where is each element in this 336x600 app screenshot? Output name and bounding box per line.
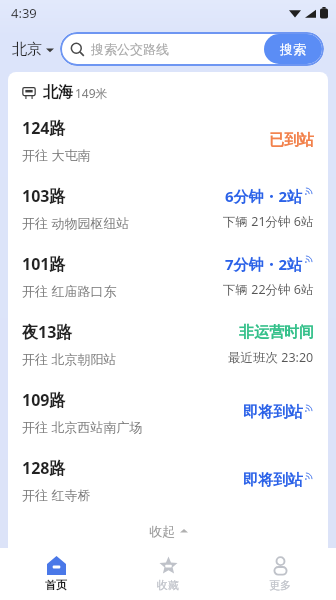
staticText: 搜索 [280,41,306,57]
staticText: 收藏 [157,578,179,592]
button[interactable]: 搜索 [264,34,322,64]
staticText: 即将到站 [243,403,303,422]
staticText: 128路 [22,457,66,479]
staticText: 开往 大屯南 [22,146,91,164]
staticText: 更多 [269,578,291,592]
staticText: 124路 [22,117,66,139]
button[interactable]: 夜13路 [8,310,328,378]
staticText: 下辆 22分钟 6站 [223,281,314,298]
staticText: 开往 北京西站南广场 [22,418,143,436]
button[interactable]: 109路 [8,378,328,446]
staticText: 最近班次 23:20 [228,349,314,366]
staticText: 101路 [22,253,66,275]
button[interactable]: 收起 [8,514,328,548]
staticText: 开往 红寺桥 [22,486,91,504]
staticText: 非运营时间 [239,323,314,342]
staticText: 北京 [12,40,42,59]
staticText: 夜13路 [22,321,73,343]
other: 更多 [271,556,290,575]
button[interactable]: 搜索公交路线 [60,32,324,66]
staticText: 103路 [22,185,66,207]
button[interactable]: 北京 [12,40,60,59]
staticText: 即将到站 [243,471,303,490]
staticText: 北海 [43,83,73,102]
other: 首页 [47,556,66,575]
staticText: 7分钟・2站 [225,254,303,274]
staticText: 搜索公交路线 [91,41,169,57]
staticText: 收起 [149,523,175,539]
staticText: 开往 北京朝阳站 [22,350,117,368]
staticText: 开往 红庙路口东 [22,282,117,300]
staticText: 4:39 [11,4,37,22]
staticText: 开往 动物园枢纽站 [22,214,130,232]
staticText: 首页 [45,578,67,592]
button[interactable]: 首页 [0,548,112,600]
button[interactable]: 101路 [8,242,328,310]
staticText: 109路 [22,389,66,411]
staticText: 6分钟・2站 [225,186,303,206]
staticText: 已到站 [269,131,314,150]
button[interactable]: 124路 [8,106,328,174]
button[interactable]: 北海 [22,83,328,102]
button[interactable]: 103路 [8,174,328,242]
button[interactable]: 收藏 [112,548,224,600]
staticText: 下辆 21分钟 6站 [223,213,314,230]
other: 收藏 [159,556,178,575]
staticText: 149米 [75,85,108,101]
button[interactable]: 128路 [8,446,328,514]
button[interactable]: 更多 [224,548,336,600]
